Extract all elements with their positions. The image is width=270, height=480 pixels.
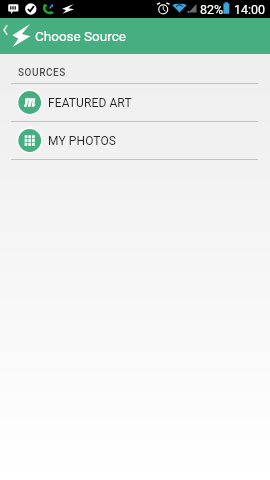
staticText: 14:00 — [234, 2, 266, 17]
staticText: FEATURED ART — [48, 96, 132, 110]
staticText: SOURCES — [18, 67, 66, 79]
button[interactable]: FEATURED ART — [0, 84, 270, 121]
staticText: 82% — [200, 2, 224, 17]
button[interactable]: MY PHOTOS — [0, 122, 270, 159]
button[interactable]: Navigate up, Muzei — [0, 18, 35, 54]
staticText: MY PHOTOS — [48, 134, 117, 148]
staticText: Choose Source — [35, 28, 126, 44]
